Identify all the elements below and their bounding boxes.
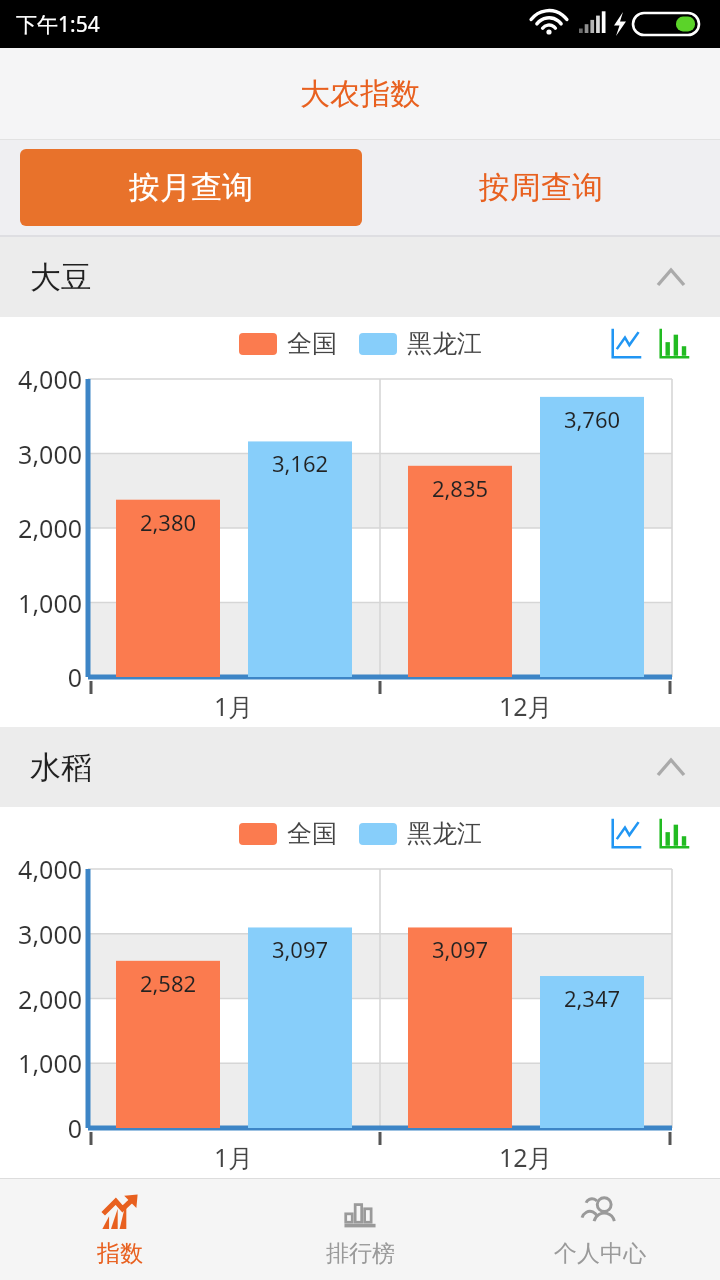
staticText: 个人中心 (554, 1239, 646, 1268)
staticText: 4,000 (0, 362, 82, 396)
staticText: 大农指数 (300, 75, 420, 113)
staticText: 大豆 (30, 258, 92, 297)
staticText: 0 (0, 1111, 82, 1145)
staticText: 4,000 (0, 852, 82, 886)
staticText: 2,000 (0, 982, 82, 1016)
staticText: 2,347 (540, 983, 644, 1013)
staticText: 1,000 (0, 586, 82, 620)
staticText: 1月 (214, 689, 254, 723)
staticText: 按周查询 (479, 168, 603, 207)
staticText: 2,835 (408, 473, 512, 503)
button[interactable]: 指数 (0, 1179, 240, 1280)
staticText: 全国 (287, 818, 337, 849)
button[interactable]: Line chart (610, 816, 644, 850)
staticText: 指数 (97, 1239, 143, 1268)
button[interactable]: 大豆 (0, 237, 720, 317)
staticText: 按月查询 (129, 168, 253, 207)
staticText: 3,000 (0, 917, 82, 951)
button[interactable]: 排行榜 (240, 1179, 480, 1280)
staticText: 2,380 (116, 507, 220, 537)
staticText: 3,162 (248, 448, 352, 478)
staticText: 全国 (287, 328, 337, 359)
button[interactable]: 水稻 (0, 727, 720, 807)
button[interactable]: Bar chart (658, 326, 692, 360)
other: Collapse (658, 760, 684, 775)
staticText: 3,097 (248, 934, 352, 964)
staticText: 排行榜 (326, 1239, 395, 1268)
button[interactable]: 按周查询 (362, 149, 720, 226)
staticText: 3,760 (540, 404, 644, 434)
button[interactable]: 个人中心 (480, 1179, 720, 1280)
button[interactable]: 按月查询 (20, 149, 362, 226)
staticText: 水稻 (30, 748, 92, 787)
staticText: 黑龙江 (407, 328, 482, 359)
staticText: 2,000 (0, 511, 82, 545)
staticText: 12月 (499, 1140, 553, 1174)
staticText: 3,000 (0, 437, 82, 471)
staticText: 1,000 (0, 1046, 82, 1080)
button[interactable]: Bar chart (658, 816, 692, 850)
staticText: 3,097 (408, 934, 512, 964)
staticText: 2,582 (116, 968, 220, 998)
button[interactable]: Line chart (610, 326, 644, 360)
staticText: 下午1:54 (16, 10, 100, 39)
other: Collapse (658, 270, 684, 285)
staticText: 12月 (499, 689, 553, 723)
staticText: 黑龙江 (407, 818, 482, 849)
staticText: 1月 (214, 1140, 254, 1174)
staticText: 0 (0, 660, 82, 694)
